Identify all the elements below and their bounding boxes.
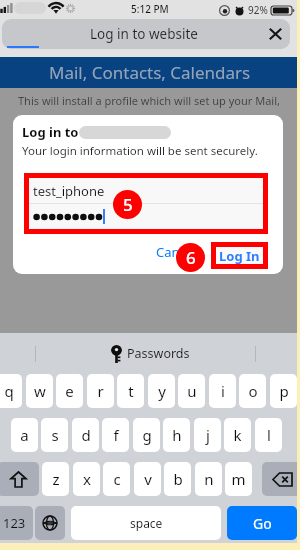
button[interactable]: q <box>0 374 22 408</box>
staticText: k <box>233 425 242 445</box>
staticText: g <box>142 425 152 445</box>
staticText: t <box>128 381 134 401</box>
button[interactable]: Cancel <box>152 238 201 266</box>
staticText: s <box>51 425 59 445</box>
button[interactable]: j <box>194 418 221 452</box>
staticText: 5 <box>123 193 133 216</box>
staticText: o <box>248 381 258 401</box>
staticText: This will install a profile which will s… <box>18 93 280 108</box>
button[interactable]: k <box>224 418 251 452</box>
button[interactable]: w <box>26 374 53 408</box>
staticText: d <box>81 425 91 445</box>
button[interactable]: m <box>225 462 252 496</box>
button[interactable]: d <box>72 418 99 452</box>
staticText: test_iphone <box>33 182 105 200</box>
other: Backspace <box>272 472 293 487</box>
staticText: j <box>206 425 210 445</box>
staticText: u <box>187 381 197 401</box>
button[interactable]: t <box>117 374 144 408</box>
button[interactable]: Close <box>265 24 285 44</box>
button[interactable]: x <box>73 462 100 496</box>
staticText: f <box>113 425 119 445</box>
button[interactable]: 123 <box>0 506 33 540</box>
staticText: l <box>267 425 271 445</box>
staticText: Mail, Contacts, Calendars <box>49 61 251 84</box>
staticText: Go <box>253 514 272 533</box>
button[interactable]: b <box>164 462 191 496</box>
staticText: i <box>221 381 225 401</box>
button[interactable]: g <box>133 418 160 452</box>
staticText: a <box>20 425 29 445</box>
staticText: Your login information will be sent secu… <box>22 143 258 159</box>
staticText: v <box>144 469 152 489</box>
button[interactable]: e <box>56 374 83 408</box>
staticText: Cancel <box>156 243 197 261</box>
staticText: n <box>204 469 214 489</box>
staticText: Log in to website <box>90 25 198 43</box>
button[interactable]: h <box>163 418 190 452</box>
other: Shift <box>10 471 27 488</box>
staticText: e <box>65 381 74 401</box>
button[interactable]: i <box>209 374 236 408</box>
button[interactable]: u <box>178 374 205 408</box>
button[interactable]: a <box>11 418 38 452</box>
button[interactable]: l <box>255 418 282 452</box>
button[interactable]: o <box>239 374 266 408</box>
staticText: y <box>158 381 166 401</box>
staticText: r <box>97 381 104 401</box>
staticText: 6 <box>186 246 196 269</box>
staticText: w <box>34 381 46 401</box>
button[interactable]: Passwords <box>111 344 190 363</box>
button[interactable]: c <box>103 462 130 496</box>
staticText: 123 <box>3 514 26 532</box>
button[interactable]: s <box>41 418 68 452</box>
button[interactable]: space <box>71 506 221 540</box>
button[interactable]: Shift <box>0 462 39 496</box>
button[interactable]: Go <box>227 506 297 540</box>
button[interactable]: Switch keyboard <box>35 506 65 540</box>
staticText: space <box>130 515 163 531</box>
button[interactable]: p <box>270 374 297 408</box>
button[interactable]: r <box>87 374 114 408</box>
staticText: Log in to <box>22 123 79 141</box>
button[interactable]: v <box>134 462 161 496</box>
staticText: b <box>173 469 183 489</box>
staticText: h <box>172 425 182 445</box>
staticText: m <box>231 469 246 489</box>
staticText: 92% <box>248 3 268 17</box>
staticText: Passwords <box>127 345 190 362</box>
button[interactable]: f <box>102 418 129 452</box>
button[interactable]: Backspace <box>262 462 300 496</box>
button[interactable]: Log In <box>216 247 263 264</box>
button[interactable]: n <box>195 462 222 496</box>
staticText: 5:12 PM <box>131 2 169 16</box>
button[interactable]: z <box>42 462 69 496</box>
staticText: z <box>52 469 60 489</box>
staticText: q <box>4 381 14 401</box>
staticText: p <box>279 381 289 401</box>
staticText: x <box>83 469 91 489</box>
staticText: c <box>113 469 121 489</box>
button[interactable]: y <box>148 374 175 408</box>
staticText: Log In <box>219 247 260 264</box>
